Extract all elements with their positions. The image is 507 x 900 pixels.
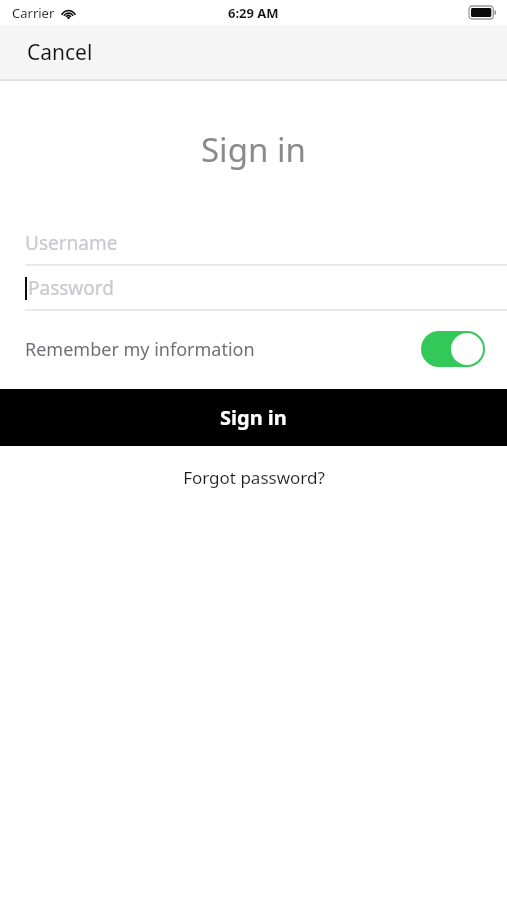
staticText: Password <box>28 275 114 301</box>
staticText: Username <box>25 230 118 256</box>
staticText: Remember my information <box>25 337 255 362</box>
button[interactable]: Sign in <box>0 389 507 446</box>
button[interactable]: Cancel <box>14 30 106 75</box>
button[interactable]: Password <box>0 267 507 309</box>
button[interactable]: Forgot password? <box>173 460 335 495</box>
button[interactable]: Remember my information toggle <box>421 331 485 367</box>
staticText: Forgot password? <box>183 466 325 489</box>
staticText: Sign in <box>201 127 306 172</box>
staticText: 6:29 AM <box>228 4 279 22</box>
staticText: Carrier <box>12 4 55 22</box>
button[interactable]: Remember my information <box>0 322 507 376</box>
button[interactable]: Username <box>0 222 507 264</box>
staticText: Cancel <box>27 38 93 67</box>
staticText: Sign in <box>220 404 287 431</box>
